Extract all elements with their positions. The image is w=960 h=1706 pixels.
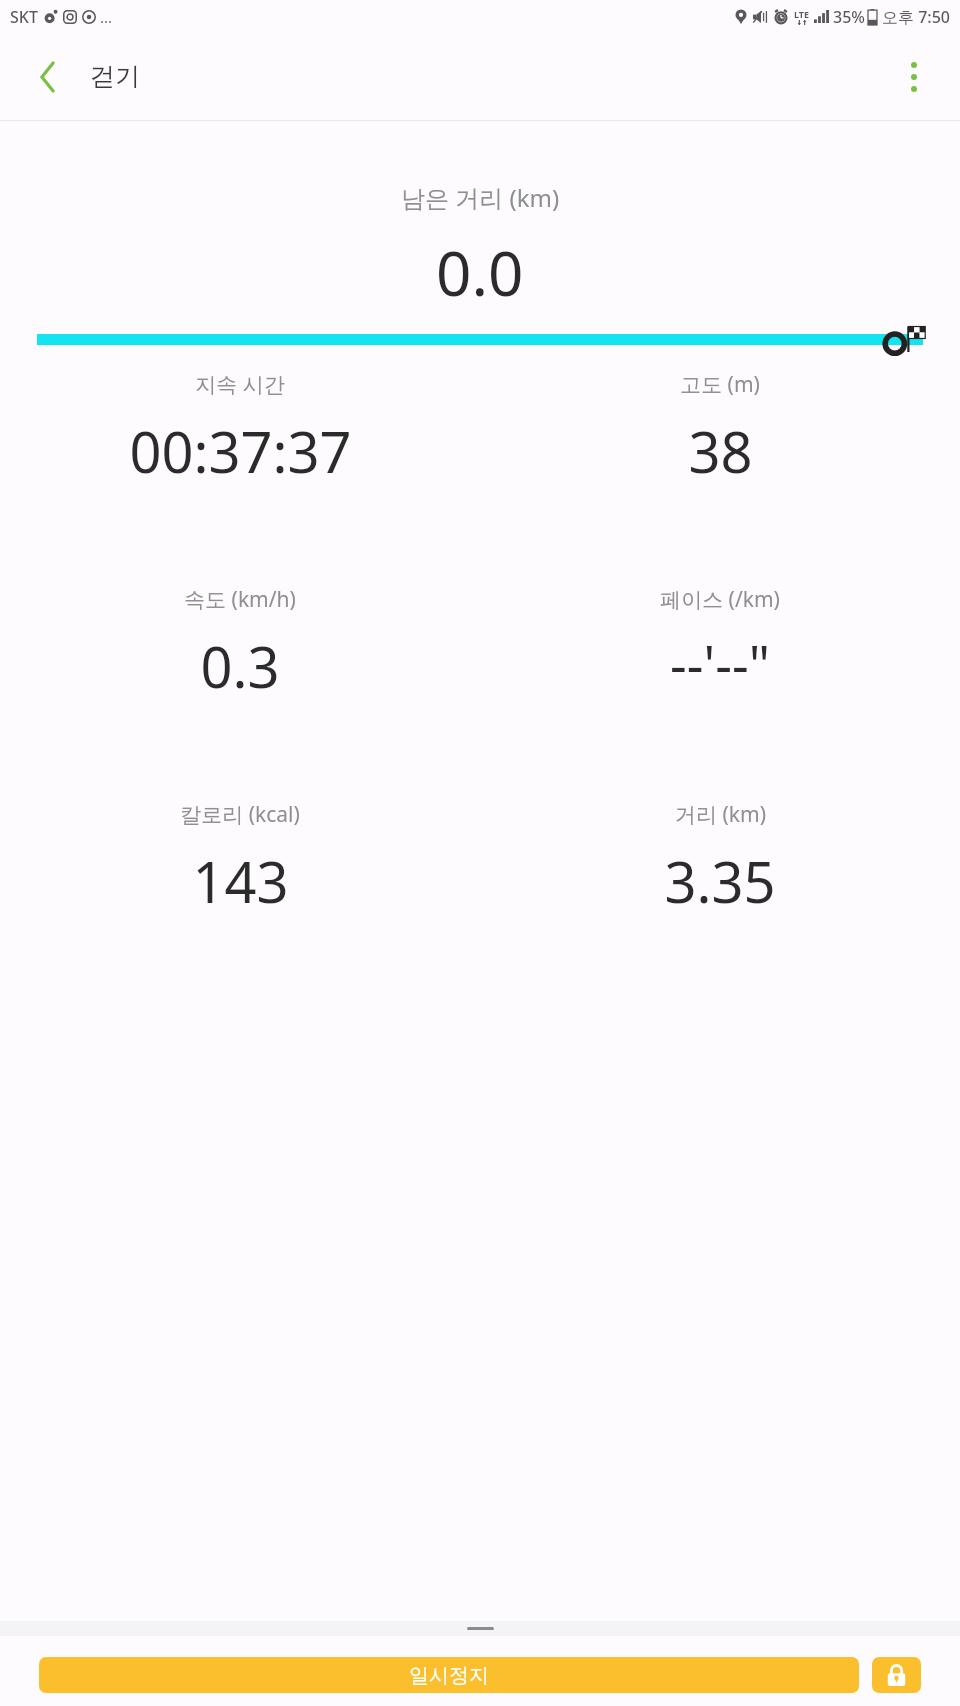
staticText: ... bbox=[100, 7, 113, 27]
staticText: SKT bbox=[10, 6, 38, 28]
button[interactable]: 칼로리 (kcal) bbox=[0, 800, 480, 919]
staticText: 0.3 bbox=[200, 628, 280, 704]
staticText: 오후 7:50 bbox=[882, 6, 950, 28]
button[interactable]: 고도 (m) bbox=[480, 370, 960, 489]
button[interactable]: Back bbox=[22, 51, 74, 103]
staticText: 00:37:37 bbox=[129, 413, 352, 489]
staticText: 38 bbox=[688, 413, 753, 489]
staticText: 남은 거리 (km) bbox=[401, 181, 560, 214]
staticText: 0.0 bbox=[436, 230, 524, 314]
staticText: 143 bbox=[192, 843, 289, 919]
button[interactable]: 거리 (km) bbox=[480, 800, 960, 919]
staticText: LTE bbox=[794, 8, 810, 20]
button[interactable]: More options bbox=[886, 49, 942, 105]
button[interactable]: Lock screen bbox=[872, 1657, 921, 1693]
button[interactable]: 페이스 (/km) bbox=[480, 585, 960, 699]
staticText: 걷기 bbox=[90, 61, 140, 92]
staticText: 칼로리 (kcal) bbox=[180, 800, 300, 829]
button[interactable]: 일시정지 bbox=[39, 1657, 859, 1693]
staticText: 일시정지 bbox=[409, 1663, 489, 1688]
button[interactable]: 지속 시간 bbox=[0, 370, 480, 489]
button[interactable]: 속도 (km/h) bbox=[0, 585, 480, 704]
staticText: 35% bbox=[833, 6, 865, 28]
staticText: 페이스 (/km) bbox=[660, 585, 780, 614]
staticText: 거리 (km) bbox=[675, 800, 766, 829]
staticText: 속도 (km/h) bbox=[184, 585, 296, 614]
staticText: --'--" bbox=[670, 628, 770, 699]
staticText: 고도 (m) bbox=[680, 370, 760, 399]
staticText: 지속 시간 bbox=[195, 370, 285, 399]
staticText: 3.35 bbox=[664, 843, 776, 919]
